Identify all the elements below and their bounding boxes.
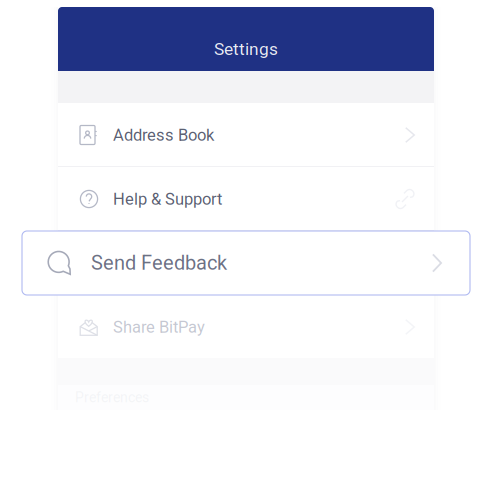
button[interactable]: Help & Support bbox=[58, 167, 434, 231]
button[interactable]: Send Feedback bbox=[22, 231, 470, 295]
staticText: Send Feedback bbox=[91, 251, 227, 275]
button[interactable]: Address Book bbox=[58, 103, 434, 167]
staticText: Address Book bbox=[113, 125, 214, 145]
staticText: Settings bbox=[214, 39, 278, 59]
button[interactable]: Send Feedback bbox=[58, 231, 434, 295]
staticText: Share BitPay bbox=[113, 317, 205, 337]
button[interactable]: Share BitPay bbox=[58, 295, 434, 359]
staticText: Send Feedback bbox=[113, 253, 225, 273]
staticText: Preferences bbox=[75, 389, 149, 406]
staticText: Help & Support bbox=[113, 189, 222, 209]
button[interactable]: Settings bbox=[58, 7, 434, 71]
